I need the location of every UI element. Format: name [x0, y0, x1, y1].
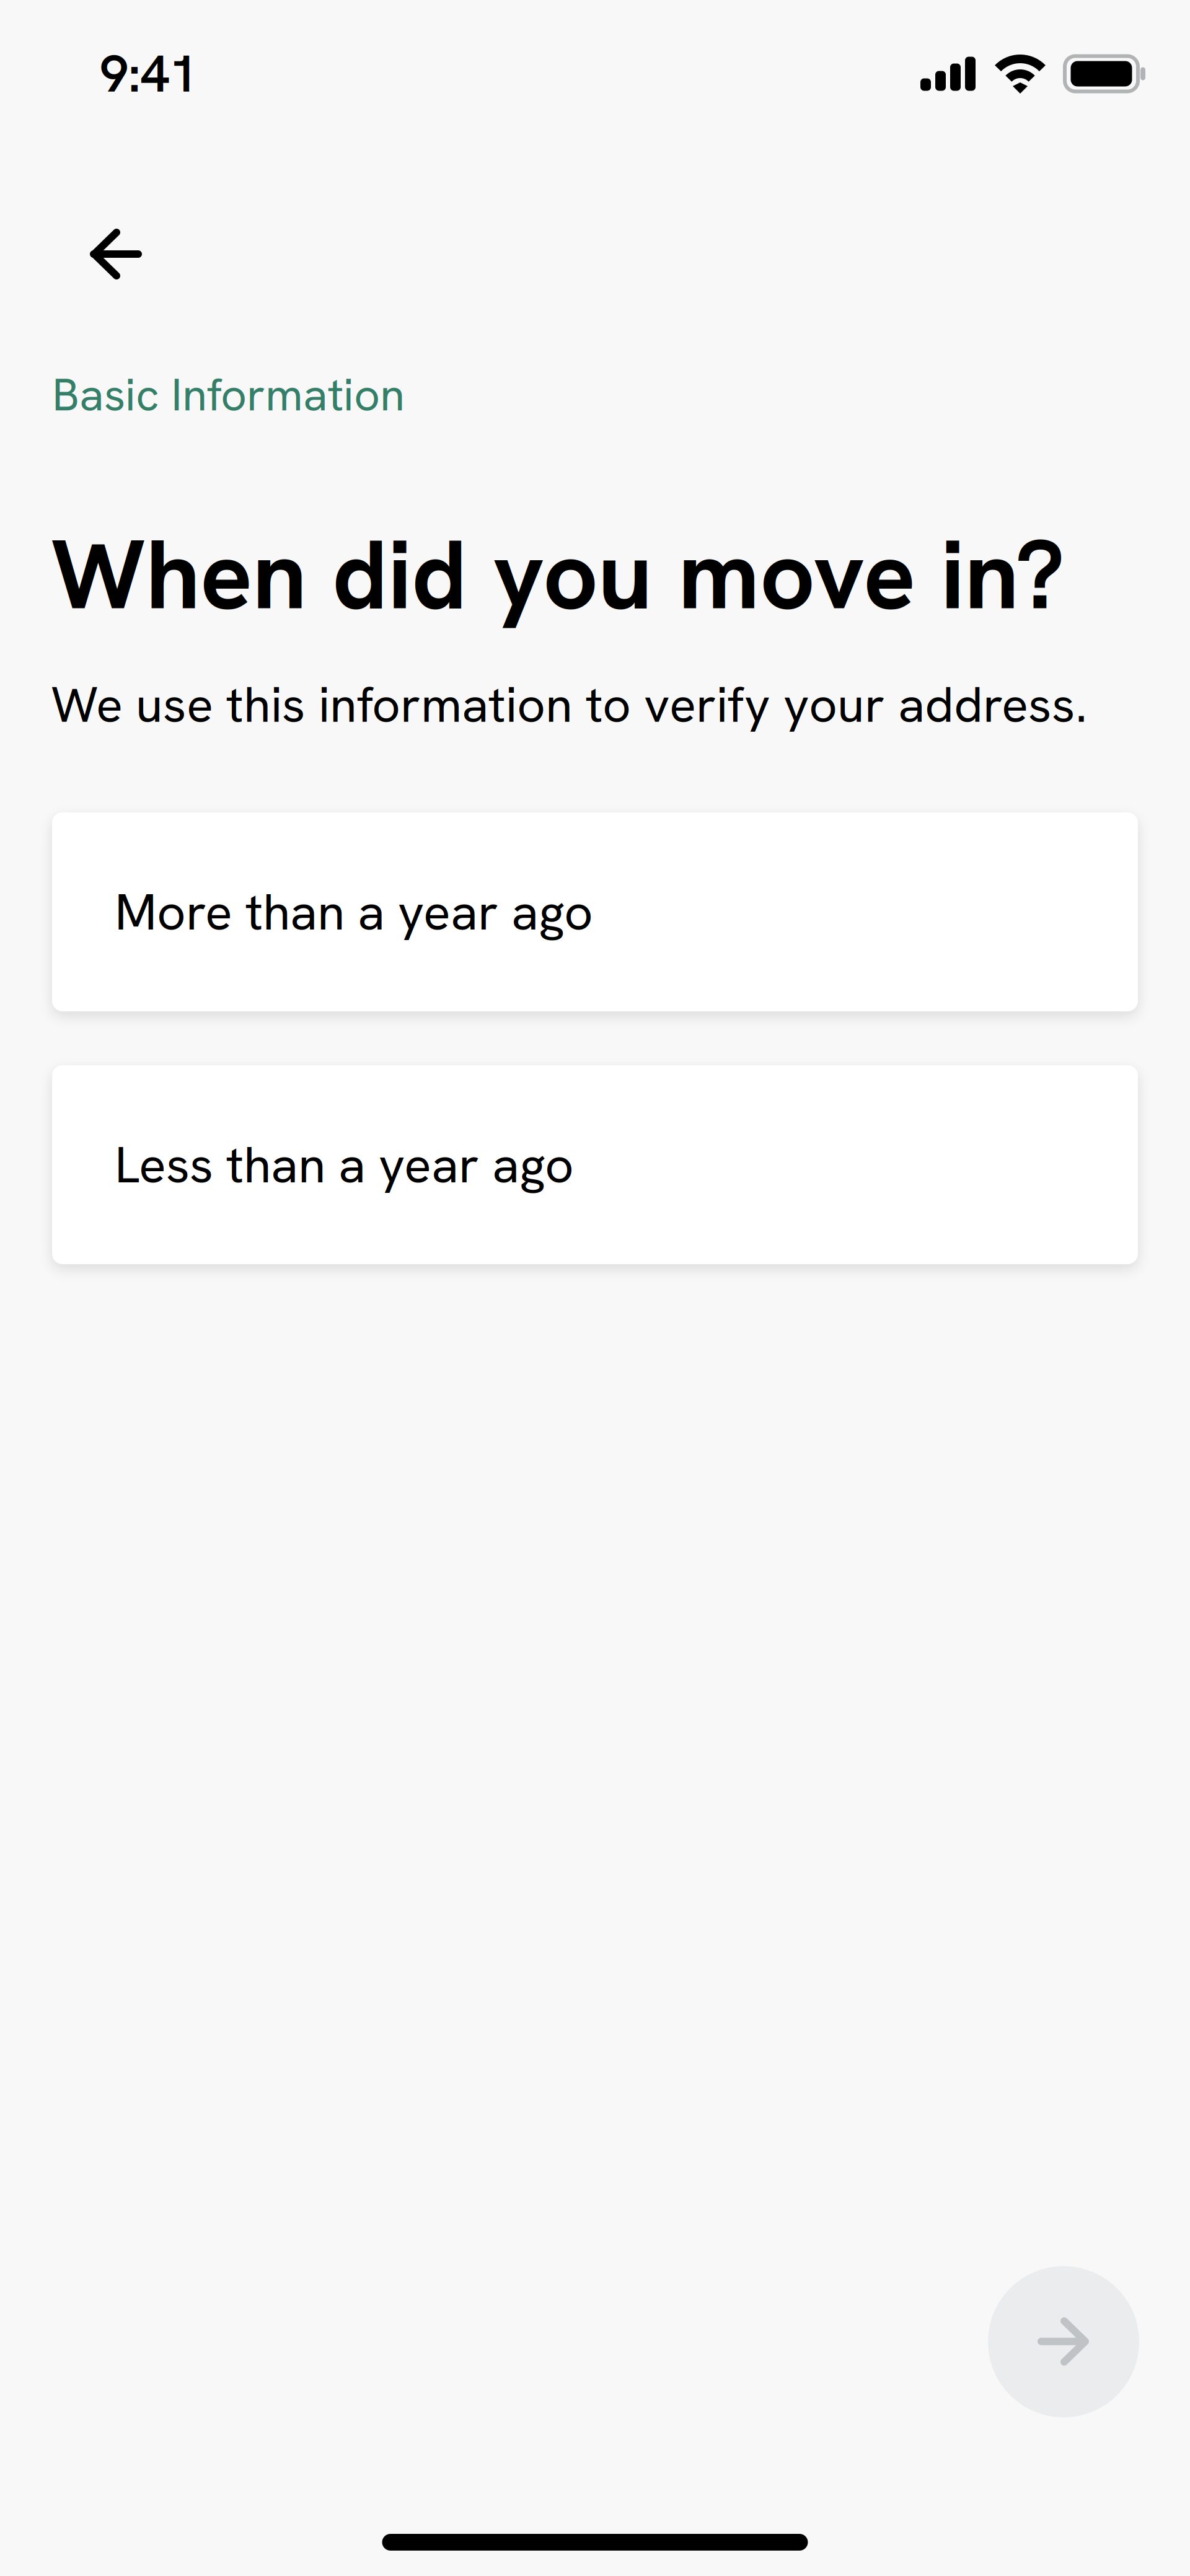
staticText: Less than a year ago: [115, 1132, 574, 1198]
button[interactable]: Next: [988, 2266, 1139, 2417]
staticText: More than a year ago: [115, 879, 593, 945]
button[interactable]: Less than a year ago: [52, 1065, 1138, 1264]
button[interactable]: More than a year ago: [52, 812, 1138, 1011]
staticText: 9:41: [100, 40, 198, 107]
staticText: We use this information to verify your a…: [51, 672, 1087, 737]
staticText: Basic Information: [52, 365, 405, 424]
staticText: When did you move in?: [51, 512, 1065, 638]
button[interactable]: Back: [0, 209, 170, 299]
